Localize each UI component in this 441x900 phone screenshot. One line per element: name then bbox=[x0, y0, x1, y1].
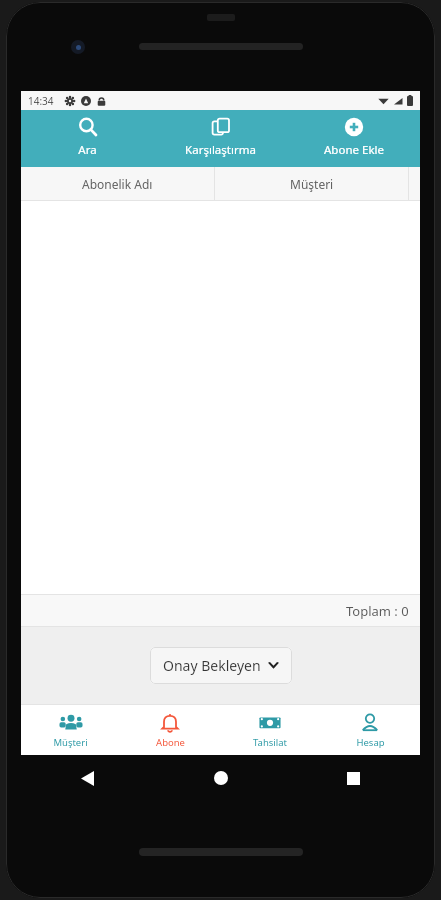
button[interactable]: Abone Ekle bbox=[287, 110, 420, 167]
button[interactable]: Ara bbox=[21, 110, 154, 167]
staticText: Ara bbox=[78, 142, 97, 158]
staticText: Müşteri bbox=[53, 736, 88, 749]
staticText: Karşılaştırma bbox=[185, 142, 256, 158]
staticText: Müşteri bbox=[290, 176, 334, 192]
button[interactable]: Abone bbox=[120, 705, 220, 755]
button[interactable]: Back bbox=[21, 763, 154, 793]
button[interactable]: Hesap bbox=[320, 705, 420, 755]
staticText: Hesap bbox=[356, 736, 385, 749]
staticText: Toplam : 0 bbox=[346, 602, 409, 620]
button[interactable]: Müşteri bbox=[21, 705, 120, 755]
staticText: Abone bbox=[156, 736, 185, 749]
button[interactable]: Home bbox=[154, 763, 287, 793]
button[interactable]: Recents bbox=[287, 763, 420, 793]
button[interactable]: Müşteri bbox=[215, 167, 408, 200]
staticText: 14:34 bbox=[28, 94, 54, 108]
staticText: Tahsilat bbox=[253, 736, 287, 749]
staticText: Abone Ekle bbox=[324, 142, 384, 158]
button[interactable]: Abonelik Adı bbox=[21, 167, 214, 200]
button[interactable]: Tahsilat bbox=[220, 705, 320, 755]
staticText: Onay Bekleyen bbox=[163, 656, 261, 675]
button[interactable]: Karşılaştırma bbox=[154, 110, 287, 167]
staticText: Abonelik Adı bbox=[82, 176, 153, 192]
button[interactable]: Onay Bekleyen bbox=[150, 647, 292, 684]
